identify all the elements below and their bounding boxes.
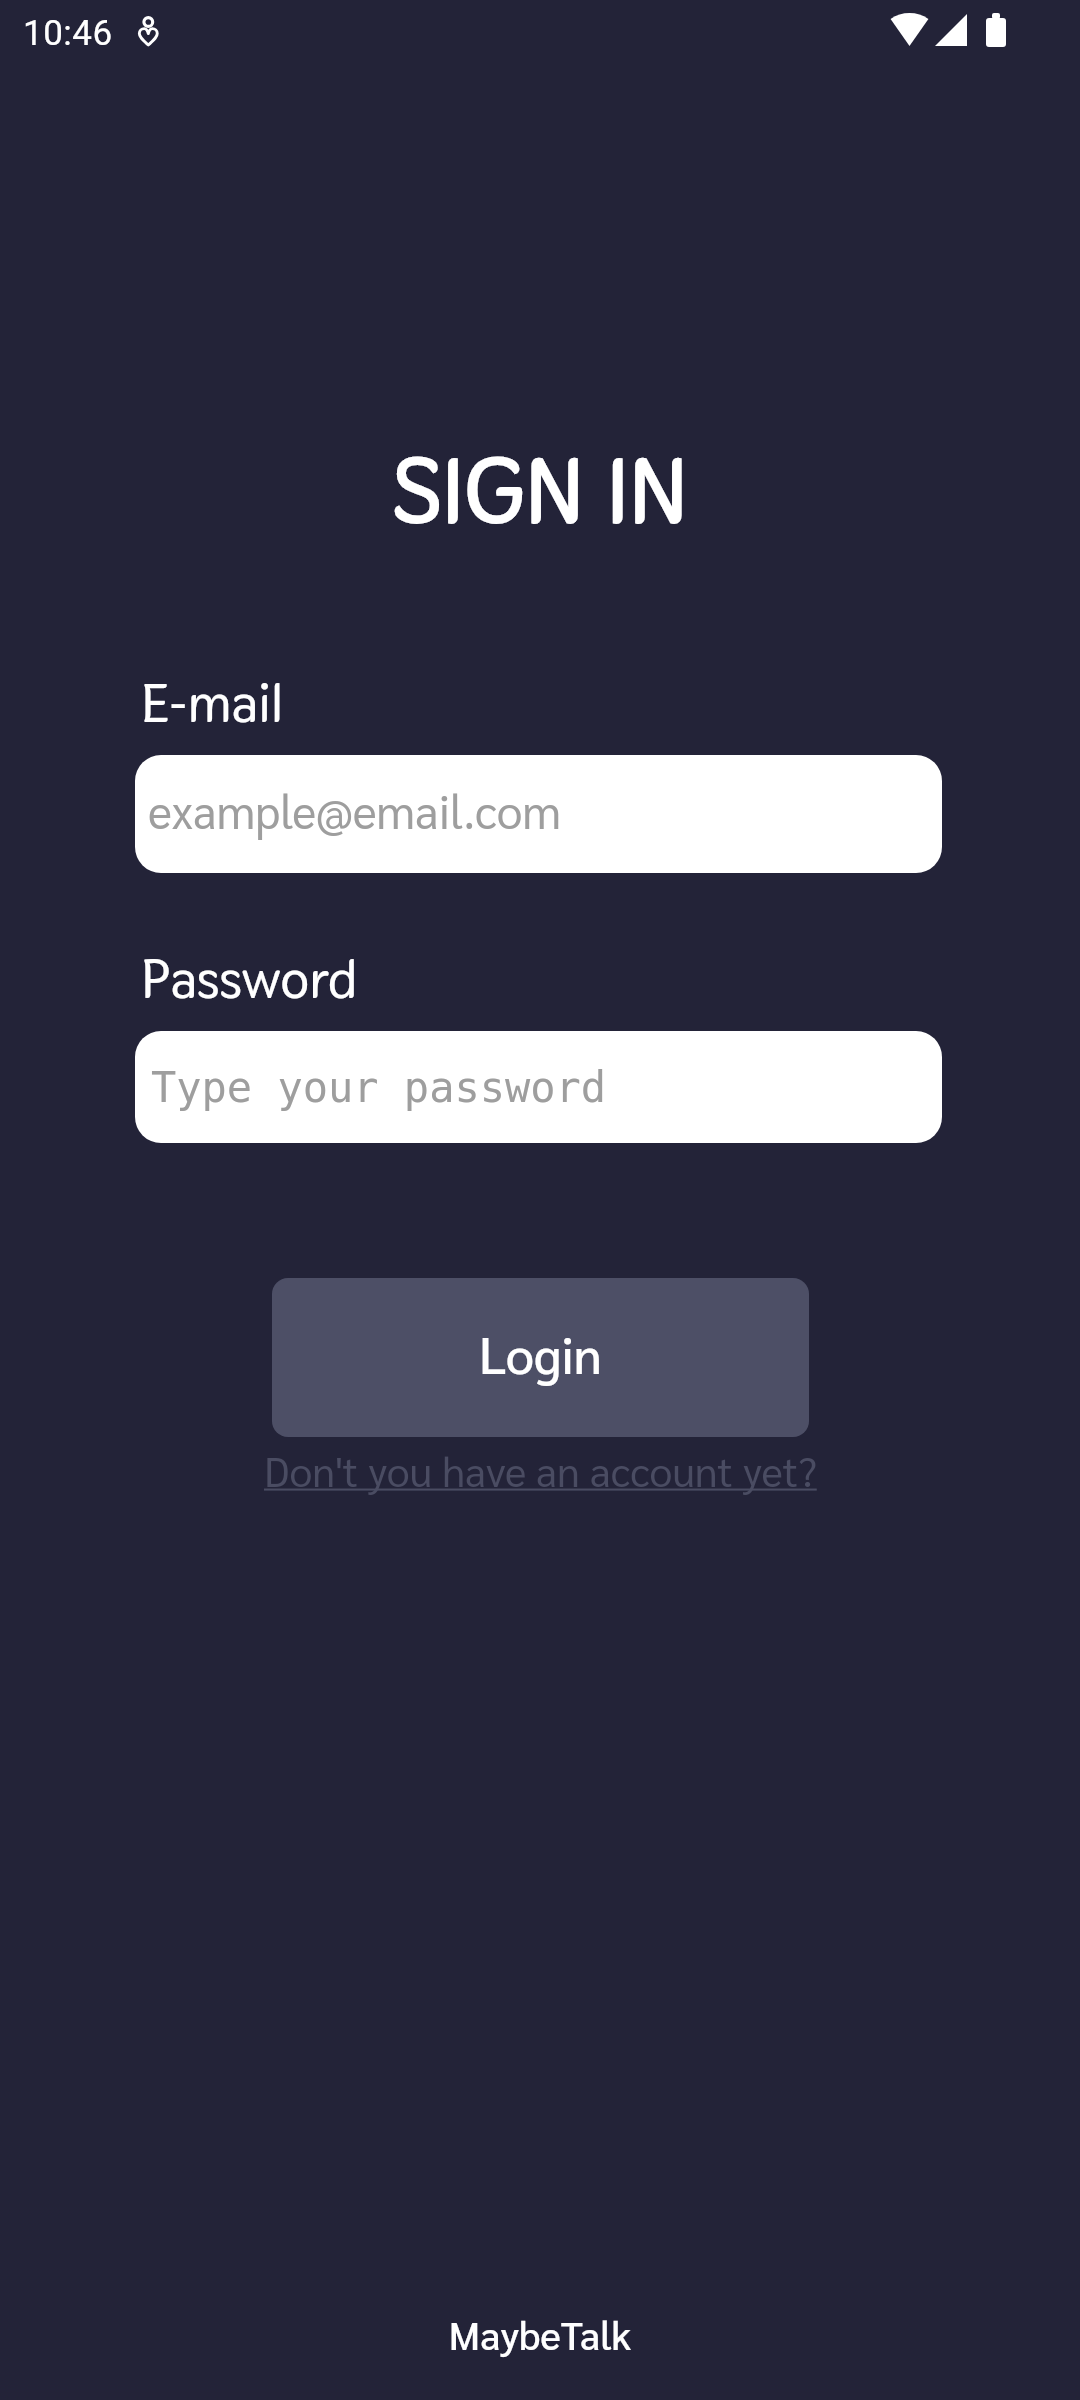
staticText: MaybeTalk — [0, 2308, 1080, 2359]
staticText: example@email.com — [148, 780, 561, 840]
staticText: E-mail — [141, 668, 284, 738]
staticText: SIGN IN — [0, 433, 1080, 549]
staticText: Type your password — [151, 1063, 607, 1112]
button[interactable]: Login — [272, 1278, 809, 1437]
staticText: Login — [479, 1321, 602, 1386]
staticText: SIGN IN — [0, 433, 1080, 549]
staticText: Password — [141, 944, 358, 1014]
staticText: Don't you have an account yet? — [264, 1443, 817, 1496]
button[interactable]: Don't you have an account yet? — [0, 1443, 1080, 1496]
button[interactable]: Type your password — [135, 1031, 942, 1143]
button[interactable]: example@email.com — [135, 755, 942, 873]
staticText: 10:46 — [23, 13, 113, 54]
